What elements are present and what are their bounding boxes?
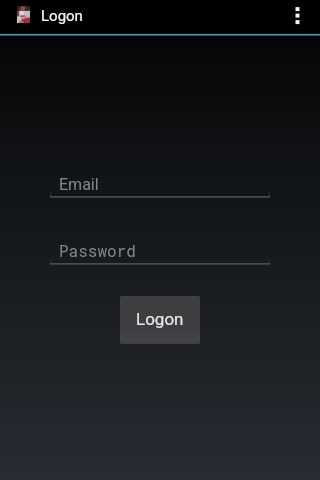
button[interactable]: Logon [120,296,200,344]
button[interactable]: More options [276,0,320,33]
staticText: Logon [41,7,83,25]
staticText: Logon [136,309,184,329]
staticText: Email [59,175,99,194]
staticText: Password [59,240,136,261]
